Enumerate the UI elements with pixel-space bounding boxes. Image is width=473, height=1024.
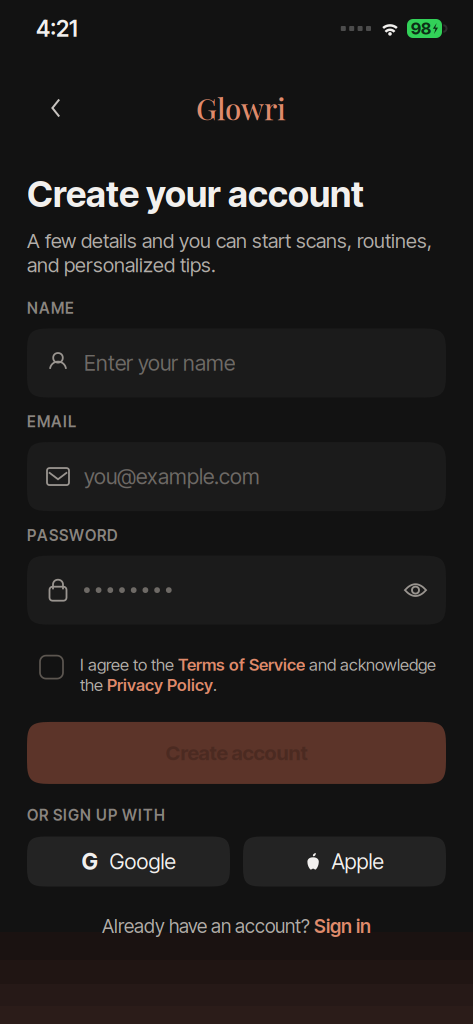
staticText: 98 (411, 18, 432, 39)
button[interactable]: G (27, 836, 230, 886)
button[interactable]: Enter your name (27, 328, 446, 397)
staticText: Google (109, 849, 175, 874)
staticText: Apple (331, 849, 383, 874)
staticText: A few details and you can start scans, r… (27, 229, 432, 277)
staticText: Glowri (196, 88, 286, 127)
staticText: O R S I G N U P W I T H (27, 806, 165, 824)
staticText: E M A I L (27, 412, 76, 431)
staticText: I agree to the Terms of Service and ackn… (80, 655, 436, 695)
button[interactable]: you@example.com (27, 442, 446, 511)
button[interactable]: Back (36, 88, 76, 128)
staticText: 4:21 (36, 15, 78, 42)
staticText: Create account (165, 741, 307, 765)
button[interactable]: Create account (27, 722, 446, 784)
staticText: N A M E (27, 299, 74, 318)
staticText: G (81, 848, 98, 875)
button[interactable]: Already have an account? Sign in (27, 914, 446, 938)
staticText: P A S S W O R D (27, 526, 118, 545)
staticText: Already have an account? Sign in (102, 914, 371, 938)
button[interactable]: Apple (243, 836, 446, 886)
button[interactable] (27, 556, 446, 625)
staticText: you@example.com (84, 464, 260, 489)
staticText: Enter your name (84, 350, 235, 376)
button[interactable]: I agree to the Terms of Service and ackn… (40, 655, 453, 695)
staticText: Create your account (27, 172, 364, 216)
